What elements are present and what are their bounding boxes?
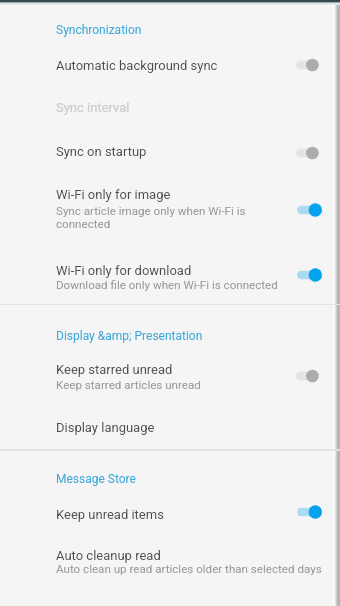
staticText: Display language [56,420,155,435]
staticText: Wi-Fi only for download [56,263,192,278]
staticText: Keep starred unread [56,362,173,377]
staticText: Download file only when Wi-Fi is connect… [56,278,278,292]
button[interactable] [288,498,336,526]
staticText: Synchronization [56,23,142,37]
staticText: Sync interval [56,100,130,115]
button[interactable] [288,51,336,79]
button[interactable] [288,196,336,224]
button[interactable] [0,540,340,584]
button[interactable] [0,130,340,166]
button[interactable] [0,178,340,230]
staticText: Display &amp; Presentation [56,329,203,343]
staticText: Automatic background sync [56,58,218,73]
button[interactable] [288,362,336,390]
staticText: connected [56,217,111,231]
staticText: Sync article image only when Wi-Fi is [56,204,246,218]
staticText: Message Store [56,472,136,486]
staticText: Wi-Fi only for image [56,187,171,202]
staticText: Auto cleanup read [56,548,161,563]
button[interactable] [0,46,340,82]
button[interactable] [0,88,340,124]
staticText: Auto clean up read articles older than s… [56,562,322,576]
button[interactable] [0,408,340,444]
staticText: Sync on startup [56,144,147,159]
button[interactable] [288,139,336,167]
staticText: Keep unread items [56,507,164,522]
staticText: Keep starred articles unread [56,378,201,392]
button[interactable] [0,353,340,397]
button[interactable] [288,261,336,289]
button[interactable] [0,256,340,300]
button[interactable] [0,495,340,531]
